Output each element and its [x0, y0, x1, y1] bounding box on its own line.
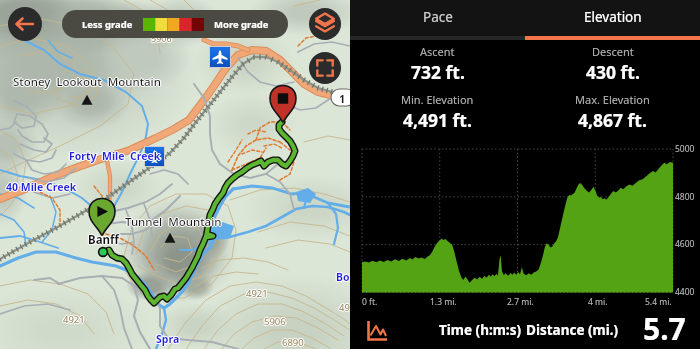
staticText: Pace: [423, 8, 453, 26]
staticText: Tunnel Mountain: [125, 213, 222, 229]
staticText: 4921: [246, 288, 268, 301]
staticText: 40 Mile Creek: [6, 180, 77, 194]
staticText: 4,867 ft.: [578, 108, 647, 132]
staticText: More grade: [214, 18, 269, 31]
staticText: 4921: [62, 313, 84, 326]
staticText: 5906: [151, 32, 172, 44]
staticText: 1: [339, 91, 346, 106]
staticText: 4921: [63, 314, 85, 327]
button[interactable]: Max. Elevation: [525, 92, 700, 137]
staticText: Bo: [336, 269, 350, 283]
staticText: Forty Mile Creek: [70, 149, 162, 163]
staticText: Distance (mi.): [526, 321, 619, 339]
staticText: 430 ft.: [586, 60, 640, 84]
staticText: 4800: [675, 191, 695, 203]
button[interactable]: Back: [8, 7, 42, 41]
staticText: 5906: [265, 315, 287, 328]
staticText: 5906: [151, 31, 172, 43]
staticText: 5.4 mi.: [645, 296, 672, 308]
staticText: Bo: [337, 270, 351, 284]
button[interactable]: Chart type: [364, 318, 388, 342]
staticText: Stoney Lookout Mountain: [12, 74, 160, 90]
button[interactable]: Fullscreen: [309, 52, 341, 84]
staticText: Spra: [157, 332, 181, 346]
button[interactable]: Descent: [525, 44, 700, 89]
staticText: Time (h:m:s): [439, 321, 522, 339]
staticText: Elevation: [584, 8, 642, 26]
staticText: 5906: [264, 316, 286, 329]
staticText: 4921: [63, 313, 85, 326]
staticText: Stoney Lookout Mountain: [14, 74, 162, 90]
staticText: Banff: [89, 232, 120, 248]
staticText: 4921: [63, 312, 85, 325]
staticText: Tunnel Mountain: [125, 215, 222, 231]
staticText: 49: [339, 301, 350, 314]
staticText: 40 Mile Creek: [6, 181, 77, 195]
staticText: 4 mi.: [588, 296, 608, 308]
button[interactable]: Elevation: [525, 0, 700, 36]
button[interactable]: Ascent: [350, 44, 525, 89]
button[interactable]: Layers: [309, 8, 341, 40]
staticText: 2.7 mi.: [507, 296, 534, 308]
staticText: 49: [340, 301, 351, 314]
staticText: Forty Mile Creek: [69, 148, 161, 162]
staticText: Spra: [156, 333, 180, 347]
staticText: 4600: [675, 238, 695, 250]
staticText: 49: [338, 301, 349, 314]
staticText: Stoney Lookout Mountain: [13, 75, 161, 91]
staticText: 40 Mile Creek: [5, 180, 76, 194]
staticText: 5906: [151, 33, 172, 45]
staticText: 40 Mile Creek: [7, 180, 78, 194]
staticText: Banff: [88, 233, 119, 249]
staticText: 5906: [263, 315, 285, 328]
staticText: Banff: [88, 231, 119, 247]
staticText: 6890: [282, 336, 304, 349]
staticText: 5.7: [643, 308, 686, 348]
staticText: 732 ft.: [411, 60, 465, 84]
staticText: 4921: [246, 287, 268, 300]
staticText: 5906: [152, 32, 173, 44]
staticText: 5906: [264, 314, 286, 327]
button[interactable]: Less grade: [62, 10, 288, 38]
staticText: Tunnel Mountain: [124, 214, 221, 230]
staticText: 6890: [282, 337, 304, 349]
staticText: Banff: [88, 232, 119, 248]
staticText: 4921: [247, 287, 269, 300]
staticText: 1.3 mi.: [430, 296, 457, 308]
staticText: Forty Mile Creek: [68, 149, 160, 163]
staticText: Ascent: [420, 44, 455, 59]
staticText: Tunnel Mountain: [126, 214, 223, 230]
staticText: Forty Mile Creek: [69, 150, 161, 164]
staticText: Spra: [155, 332, 179, 346]
staticText: Forty Mile Creek: [69, 149, 161, 163]
button[interactable]: Min. Elevation: [350, 92, 525, 137]
staticText: 4921: [246, 286, 268, 299]
staticText: Bo: [336, 271, 350, 285]
staticText: Bo: [336, 270, 350, 284]
staticText: 4400: [675, 286, 695, 298]
staticText: 5906: [150, 32, 171, 44]
button[interactable]: Airport: [145, 147, 164, 166]
staticText: Max. Elevation: [575, 92, 650, 107]
staticText: Banff: [87, 232, 118, 248]
staticText: 6890: [283, 336, 305, 349]
staticText: Spra: [156, 331, 180, 345]
staticText: 4921: [245, 287, 267, 300]
staticText: 4921: [64, 313, 86, 326]
button[interactable]: Airport: [210, 47, 230, 67]
staticText: 40 Mile Creek: [6, 179, 77, 193]
staticText: Stoney Lookout Mountain: [13, 74, 161, 90]
staticText: Descent: [592, 44, 634, 59]
staticText: 4,491 ft.: [403, 108, 472, 132]
staticText: Tunnel Mountain: [125, 214, 222, 230]
staticText: 6890: [282, 335, 304, 348]
staticText: Stoney Lookout Mountain: [13, 73, 161, 89]
staticText: Spra: [156, 332, 180, 346]
staticText: 49: [339, 300, 350, 313]
button[interactable]: Pace: [350, 0, 525, 36]
staticText: 0 ft.: [362, 296, 378, 308]
staticText: 5000: [675, 143, 695, 155]
staticText: 6890: [281, 336, 303, 349]
staticText: Min. Elevation: [401, 92, 474, 107]
staticText: 5906: [264, 315, 286, 328]
